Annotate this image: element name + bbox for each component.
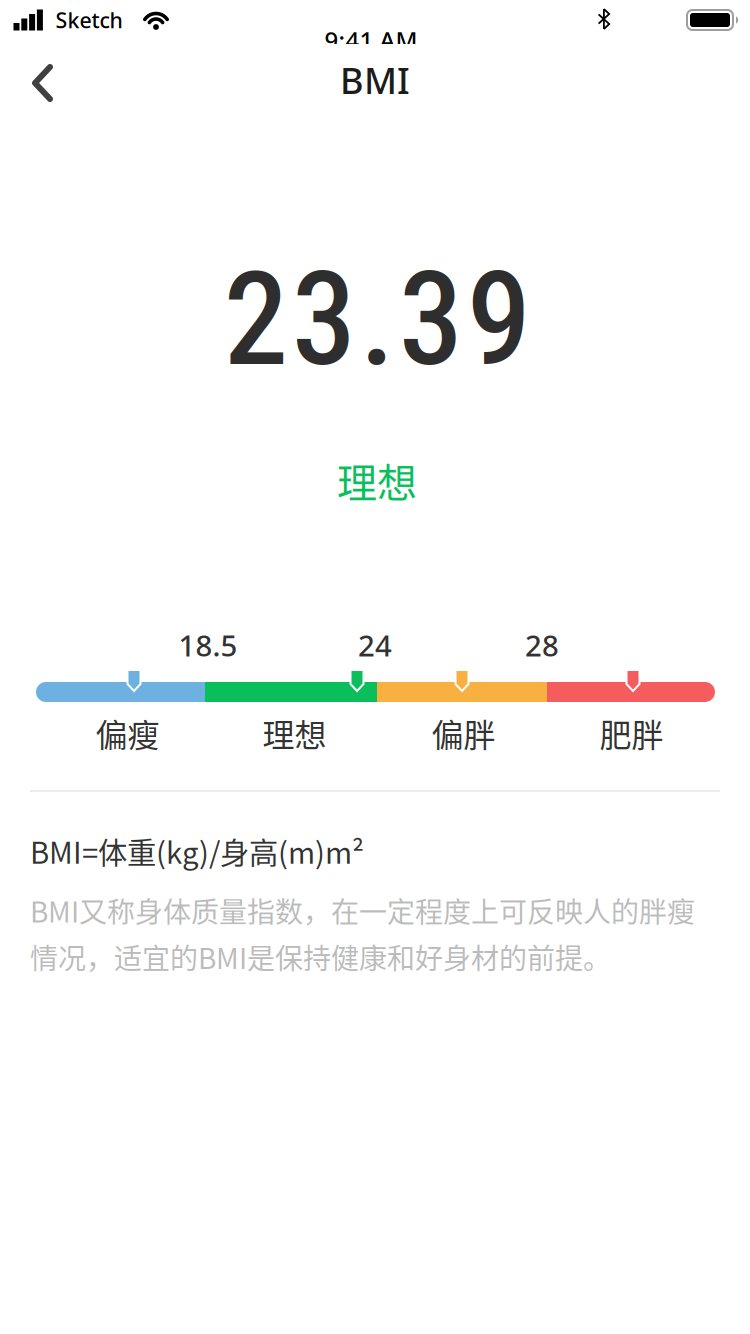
staticText: 理想: [262, 710, 326, 756]
staticText: 24: [358, 625, 392, 664]
staticText: BMI又称身体质量指数，在一定程度上可反映人的胖瘦: [30, 890, 695, 930]
staticText: 理想: [337, 451, 417, 509]
staticText: 18.5: [178, 625, 237, 664]
staticText: BMI: [340, 56, 410, 104]
staticText: 23.39: [223, 243, 531, 396]
staticText: 情况，适宜的BMI是保持健康和好身材的前提。: [30, 936, 611, 977]
staticText: 偏瘦: [95, 710, 159, 756]
staticText: 偏胖: [431, 710, 495, 756]
button[interactable]: Back: [18, 50, 67, 116]
staticText: 28: [525, 625, 559, 664]
staticText: BMI=体重(kg)/身高(m)m²: [30, 830, 364, 872]
staticText: Sketch: [55, 6, 122, 34]
staticText: 9:41 AM: [324, 24, 417, 56]
staticText: 肥胖: [599, 710, 663, 756]
